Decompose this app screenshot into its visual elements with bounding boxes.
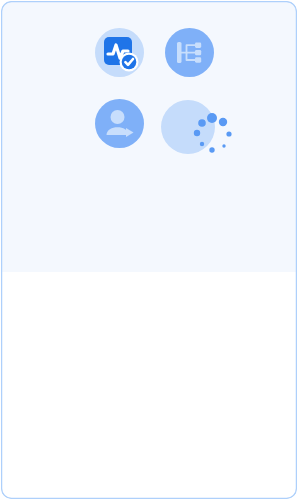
button[interactable]: Transfer user: [95, 99, 144, 148]
button[interactable]: Account tree: [165, 28, 214, 77]
button[interactable]: Health check: [95, 28, 144, 77]
button[interactable]: Bubbles: [161, 96, 219, 154]
